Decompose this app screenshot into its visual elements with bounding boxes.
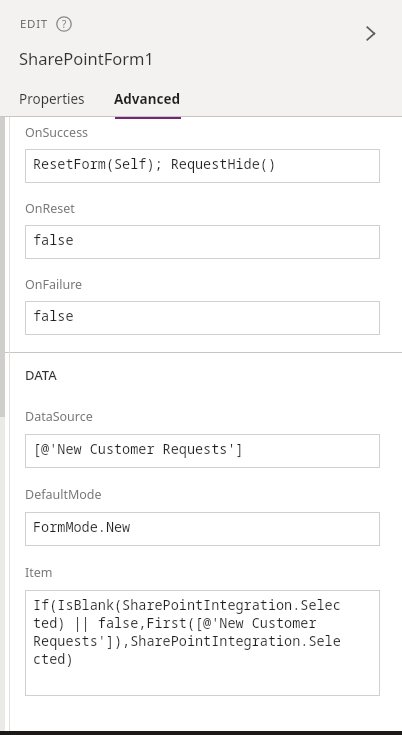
staticText: If(IsBlank(SharePointIntegration.Selec [33, 596, 341, 614]
staticText: OnFailure [25, 276, 83, 293]
staticText: DataSource [25, 408, 93, 425]
staticText: cted) [33, 650, 74, 668]
staticText: Properties [19, 90, 85, 108]
staticText: Requests']),SharePointIntegration.Sele [33, 632, 341, 650]
staticText: false [33, 231, 74, 249]
staticText: SharePointForm1 [19, 47, 154, 69]
button[interactable]: false [25, 301, 380, 335]
button[interactable]: FormMode.New [25, 512, 380, 546]
staticText: EDIT [20, 16, 48, 32]
staticText: DATA [25, 366, 57, 384]
staticText: OnSuccess [25, 124, 89, 141]
staticText: false [33, 307, 74, 325]
staticText: OnReset [25, 200, 75, 217]
button[interactable]: [@'New Customer Requests'] [25, 434, 380, 468]
button[interactable]: false [25, 225, 380, 259]
button[interactable]: If(IsBlank(SharePointIntegration.Selec [25, 590, 380, 696]
staticText: DefaultMode [25, 486, 102, 503]
button[interactable]: Advanced [114, 90, 181, 119]
staticText: ted) || false,First([@'New Customer [33, 614, 317, 632]
staticText: ? [62, 17, 67, 31]
staticText: ResetForm(Self); RequestHide() [33, 155, 276, 173]
button[interactable]: Help [56, 16, 72, 32]
staticText: Item [25, 564, 53, 581]
button[interactable]: Expand panel [353, 16, 387, 50]
button[interactable]: ResetForm(Self); RequestHide() [25, 149, 380, 183]
staticText: FormMode.New [33, 518, 131, 536]
staticText: Advanced [114, 90, 181, 108]
button[interactable]: Properties [19, 90, 85, 108]
staticText: [@'New Customer Requests'] [33, 440, 244, 458]
